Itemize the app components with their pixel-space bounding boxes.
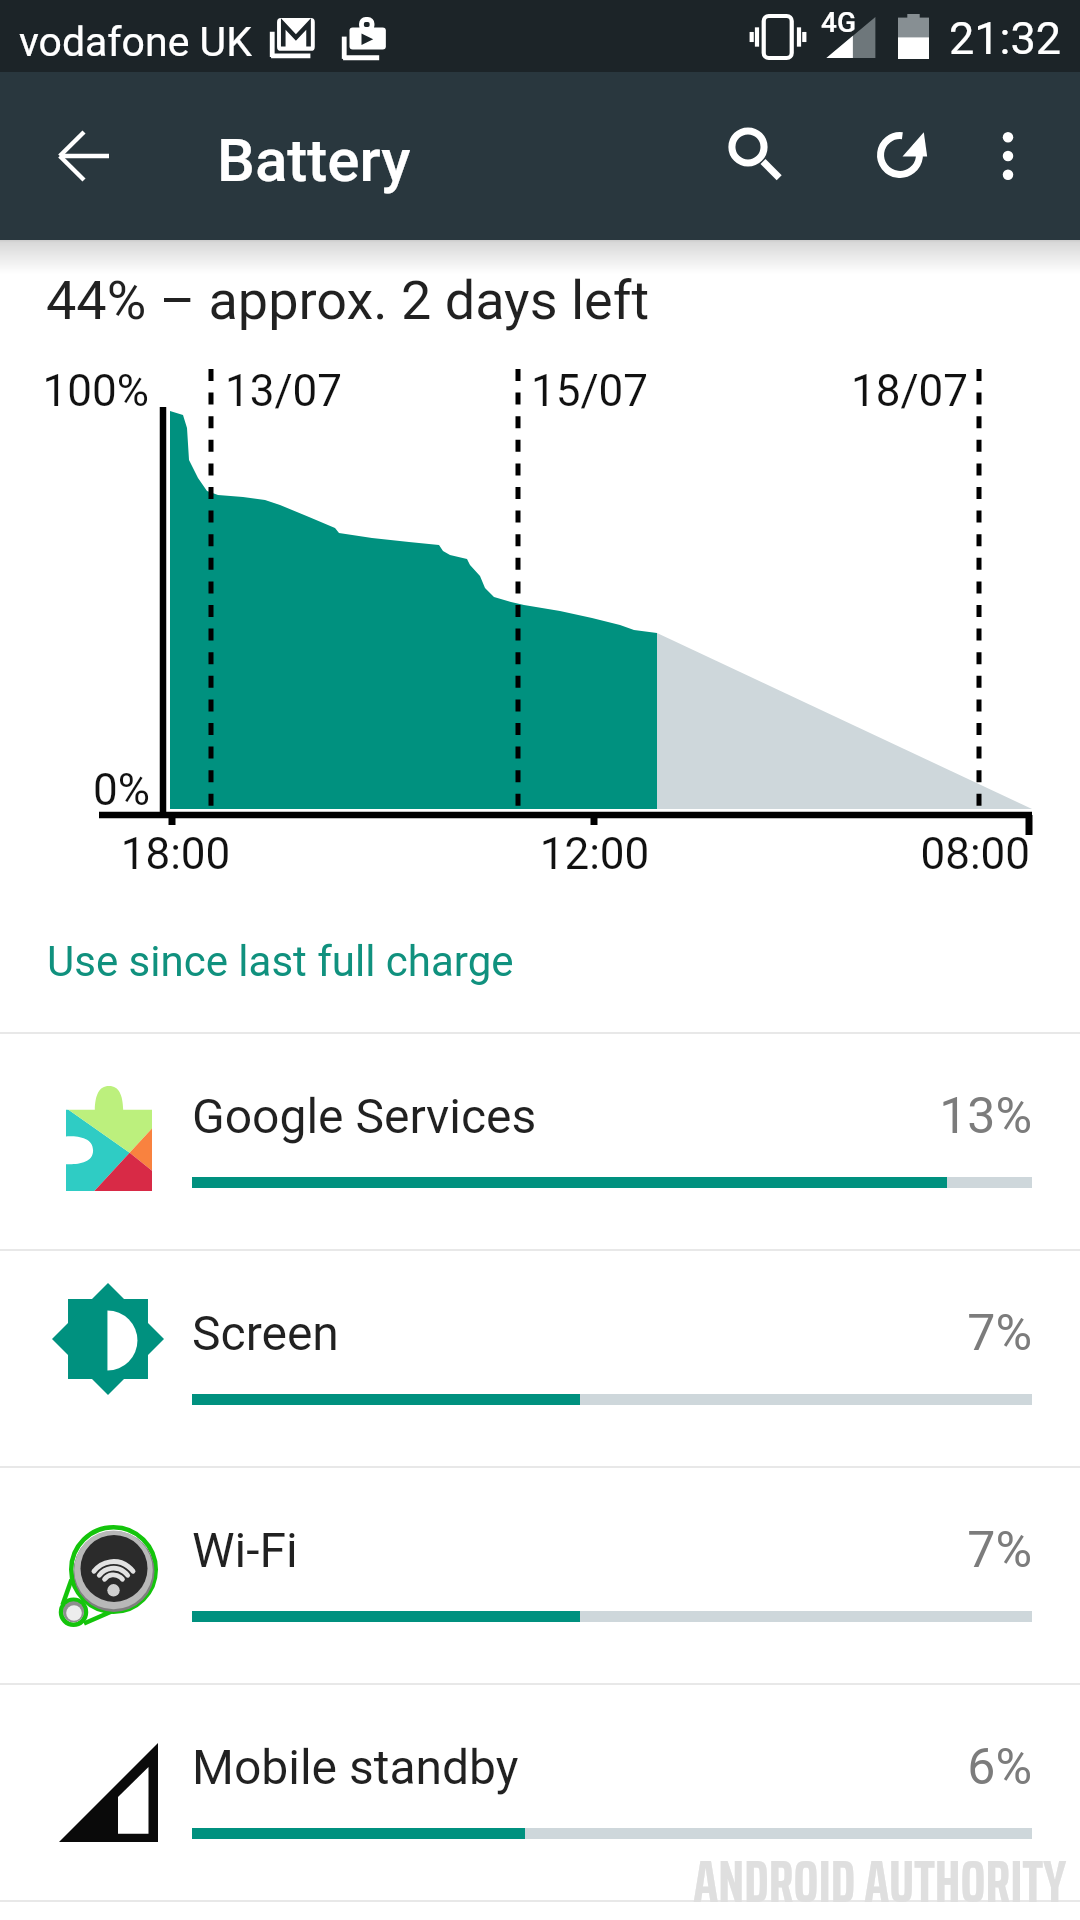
button[interactable]: More options — [957, 105, 1059, 207]
button[interactable]: Refresh — [848, 103, 952, 207]
button[interactable]: Screen — [0, 1249, 1080, 1467]
button[interactable]: Back — [33, 105, 135, 207]
button[interactable]: Wi-Fi — [0, 1466, 1080, 1684]
staticText: 18/07 — [700, 365, 968, 417]
staticText: Screen — [192, 1305, 339, 1361]
staticText: 13/07 — [225, 365, 343, 417]
staticText: ANDROID AUTHORITY — [600, 1835, 1066, 1920]
staticText: 6% — [732, 1738, 1032, 1797]
staticText: Google Services — [192, 1088, 537, 1144]
staticText: 100% — [0, 365, 149, 417]
staticText: 15/07 — [531, 365, 649, 417]
staticText: 12:00 — [470, 828, 719, 880]
button[interactable]: Search — [702, 101, 804, 203]
staticText: 4G — [821, 6, 856, 39]
staticText: Wi-Fi — [192, 1522, 298, 1578]
staticText: 13% — [732, 1087, 1032, 1146]
button[interactable]: Google Services — [0, 1032, 1080, 1250]
staticText: Battery — [217, 125, 411, 195]
staticText: 7% — [732, 1304, 1032, 1363]
button[interactable]: Use since last full charge — [0, 907, 1080, 1015]
staticText: 08:00 — [780, 828, 1030, 880]
staticText: Use since last full charge — [47, 937, 514, 986]
staticText: 21:32 — [949, 12, 1062, 65]
staticText: 7% — [732, 1521, 1032, 1580]
staticText: 0% — [0, 764, 150, 816]
staticText: 18:00 — [51, 828, 300, 880]
staticText: Mobile standby — [192, 1739, 519, 1795]
button[interactable]: Mobile standby — [0, 1683, 1080, 1901]
staticText: vodafone UK — [19, 18, 252, 66]
staticText: 44% – approx. 2 days left — [46, 269, 650, 332]
